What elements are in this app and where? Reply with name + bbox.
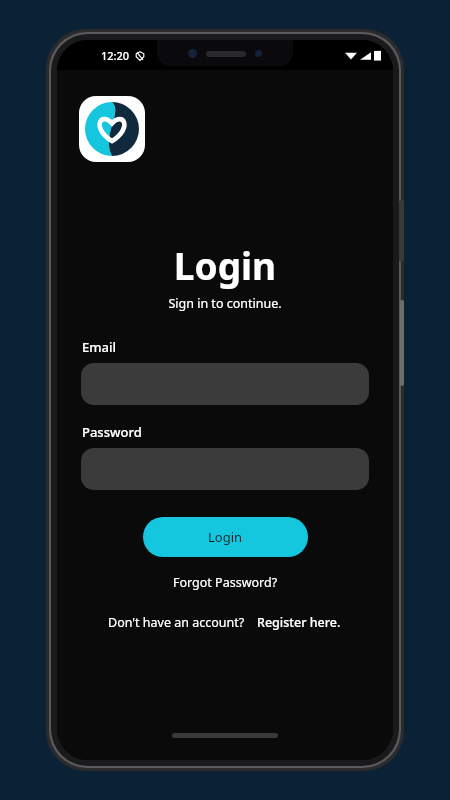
staticText: Don't have an account? (108, 614, 245, 631)
staticText: Login (208, 528, 243, 546)
button[interactable]: Login (143, 517, 308, 557)
button[interactable] (81, 363, 369, 405)
button[interactable] (81, 448, 369, 490)
button[interactable]: Forgot Password? (167, 571, 284, 594)
other: App logo (79, 96, 145, 162)
staticText: Register here. (257, 614, 341, 631)
staticText: Sign in to continue. (57, 295, 393, 312)
button[interactable]: Register here. (255, 612, 343, 633)
staticText: Login (57, 240, 393, 290)
staticText: Email (82, 338, 117, 356)
staticText: 12:20 (101, 48, 130, 63)
staticText: Password (82, 423, 142, 441)
staticText: Forgot Password? (173, 574, 278, 591)
